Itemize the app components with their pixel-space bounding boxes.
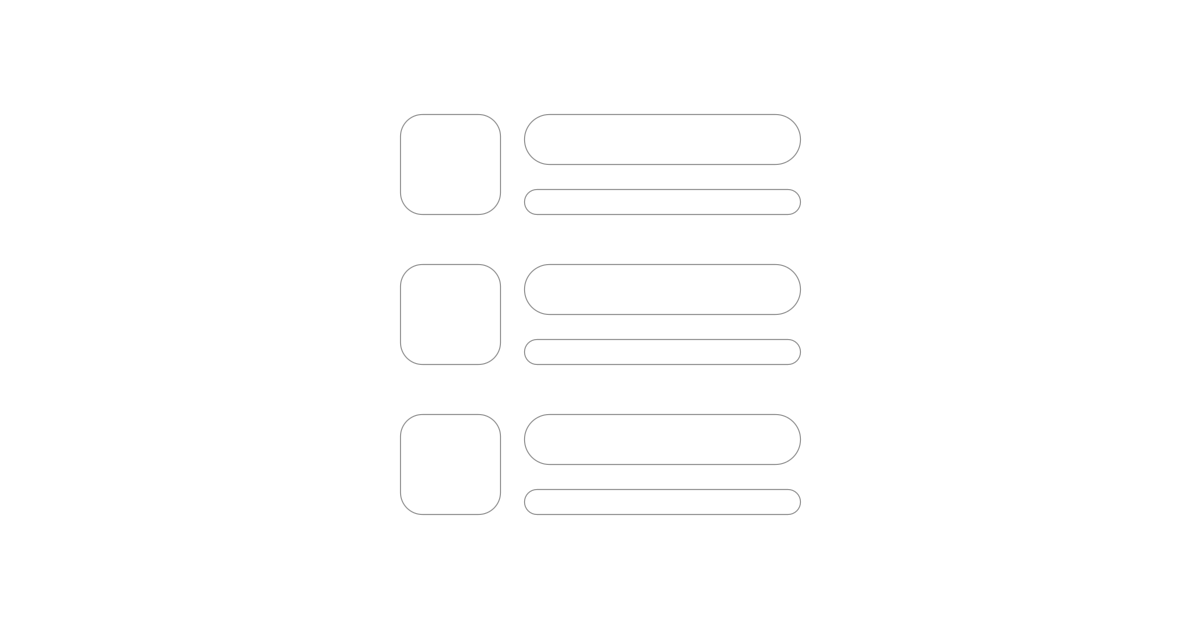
button[interactable]: Loading item xyxy=(400,414,800,514)
button[interactable]: Loading item xyxy=(400,264,800,364)
button[interactable]: Loading item xyxy=(400,114,800,214)
